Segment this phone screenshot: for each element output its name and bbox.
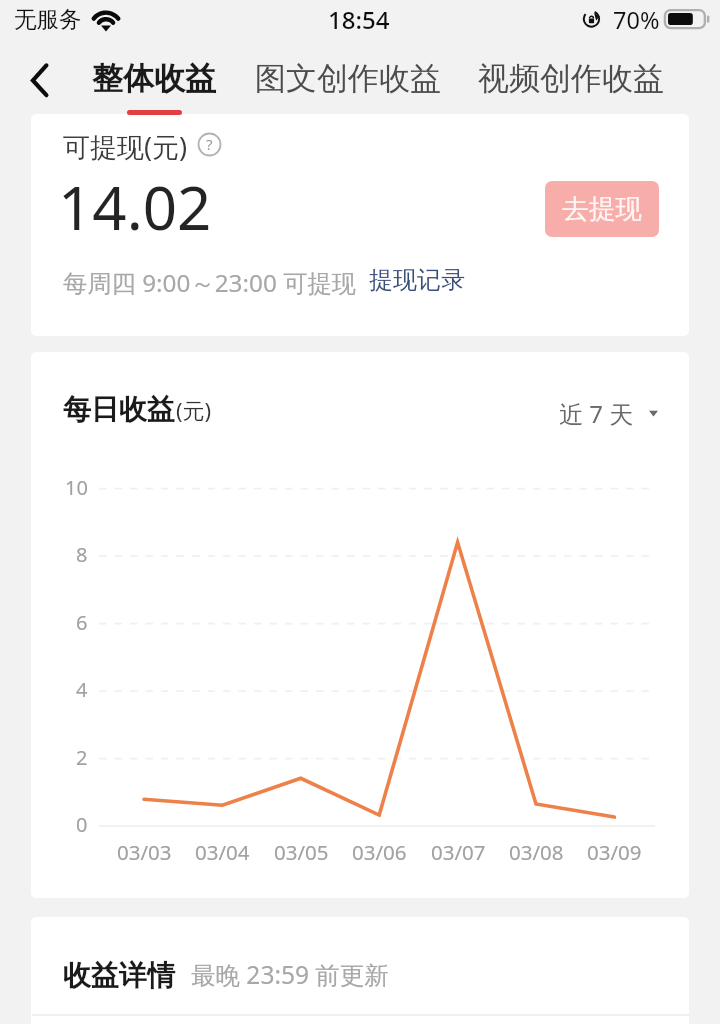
staticText: 每日收益 [63,392,175,427]
staticText: 10 [65,474,88,501]
staticText: 可提现(元) [63,128,188,165]
staticText: 提现记录 [369,265,465,295]
staticText: 03/04 [195,838,250,866]
staticText: 03/08 [509,838,564,866]
staticText: 视频创作收益 [478,59,664,98]
staticText: 去提现 [562,192,643,226]
staticText: 2 [76,744,88,771]
button[interactable]: 去提现 [545,181,659,237]
staticText: 无服务 [14,5,82,33]
button[interactable]: 提现记录 [369,265,465,295]
staticText: 03/06 [352,838,407,866]
staticText: 03/07 [431,838,486,866]
button[interactable]: Back [8,54,60,106]
staticText: 03/09 [587,838,642,866]
staticText: 6 [76,609,88,636]
staticText: 0 [76,811,88,838]
button[interactable]: 近 7 天 [559,397,656,430]
staticText: 收益详情 [63,958,175,993]
button[interactable]: Help [197,132,222,157]
staticText: 近 7 天 [559,397,634,430]
staticText: 03/03 [117,838,172,866]
button[interactable]: 视频创作收益 [472,54,670,102]
staticText: 03/05 [274,838,329,866]
staticText: (元) [176,395,212,425]
staticText: 18:54 [328,3,390,36]
staticText: 每周四 9:00～23:00 可提现 [63,266,357,299]
staticText: 最晚 23:59 前更新 [191,958,389,991]
staticText: 70% [613,4,660,36]
staticText: 14.02 [58,166,212,248]
button[interactable]: 图文创作收益 [249,54,447,102]
staticText: 图文创作收益 [255,59,441,98]
button[interactable]: 整体收益 [85,54,223,102]
staticText: 4 [76,676,88,703]
staticText: ? [206,134,213,154]
staticText: 8 [76,541,88,568]
staticText: 整体收益 [92,59,216,98]
